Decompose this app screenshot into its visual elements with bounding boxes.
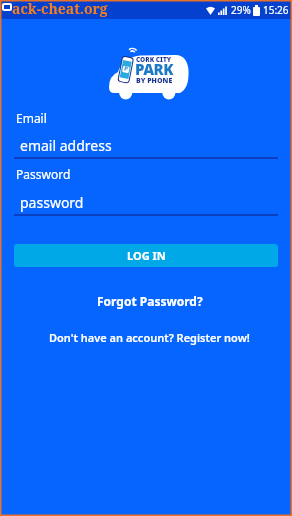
staticText: password [20,193,84,212]
staticText: P [123,65,129,73]
button[interactable]: Forgot Password? [97,293,203,309]
staticText: PARK [135,59,174,79]
staticText: BY PHONE [136,76,173,86]
staticText: 29% [231,3,251,17]
button[interactable]: password [14,187,278,216]
button[interactable]: LOG IN [14,244,278,267]
button[interactable]: email address [14,130,278,159]
staticText: Password [16,166,71,182]
staticText: email address [20,136,112,155]
staticText: Email [16,110,47,126]
button[interactable]: Don't have an account? Register now! [49,330,250,345]
staticText: LOG IN [127,248,166,263]
staticText: 15:26 [263,3,289,17]
staticText: ack-cheat.org [12,0,108,18]
staticText: CORK CITY [136,55,172,64]
